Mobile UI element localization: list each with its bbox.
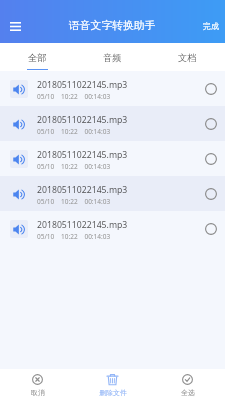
staticText: 音频 (103, 52, 122, 64)
staticText: 20180511022145.mp3 (37, 219, 128, 231)
staticText: 05/10 10:22 00:14:03 (37, 92, 111, 101)
staticText: 05/10 10:22 00:14:03 (37, 232, 111, 241)
button[interactable]: 音频 (75, 43, 150, 71)
staticText: 全部 (28, 52, 47, 64)
button[interactable]: Delete files (75, 369, 150, 400)
button[interactable]: 文档 (150, 43, 225, 71)
button[interactable]: 20180511022145.mp3 (0, 141, 225, 176)
staticText: 文档 (178, 52, 197, 64)
staticText: 删除文件 (99, 388, 127, 397)
button[interactable]: 20180511022145.mp3 (0, 211, 225, 246)
staticText: 语音文字转换助手 (69, 19, 156, 33)
staticText: 05/10 10:22 00:14:03 (37, 162, 111, 171)
staticText: 20180511022145.mp3 (37, 184, 128, 196)
staticText: 完成 (203, 21, 219, 31)
staticText: 05/10 10:22 00:14:03 (37, 197, 111, 206)
button[interactable]: Cancel (0, 369, 75, 400)
button[interactable]: 20180511022145.mp3 (0, 176, 225, 211)
button[interactable]: Select all (150, 369, 225, 400)
button[interactable]: 20180511022145.mp3 (0, 106, 225, 141)
button[interactable]: 20180511022145.mp3 (0, 71, 225, 106)
staticText: 20180511022145.mp3 (37, 149, 128, 161)
button[interactable]: Menu (6, 17, 25, 36)
staticText: 05/10 10:22 00:14:03 (37, 127, 111, 136)
staticText: 取消 (31, 388, 45, 397)
button[interactable]: 完成 (196, 17, 225, 35)
staticText: 20180511022145.mp3 (37, 114, 128, 126)
button[interactable]: 全部 (0, 43, 75, 71)
staticText: 20180511022145.mp3 (37, 79, 128, 91)
staticText: 全选 (181, 388, 195, 397)
